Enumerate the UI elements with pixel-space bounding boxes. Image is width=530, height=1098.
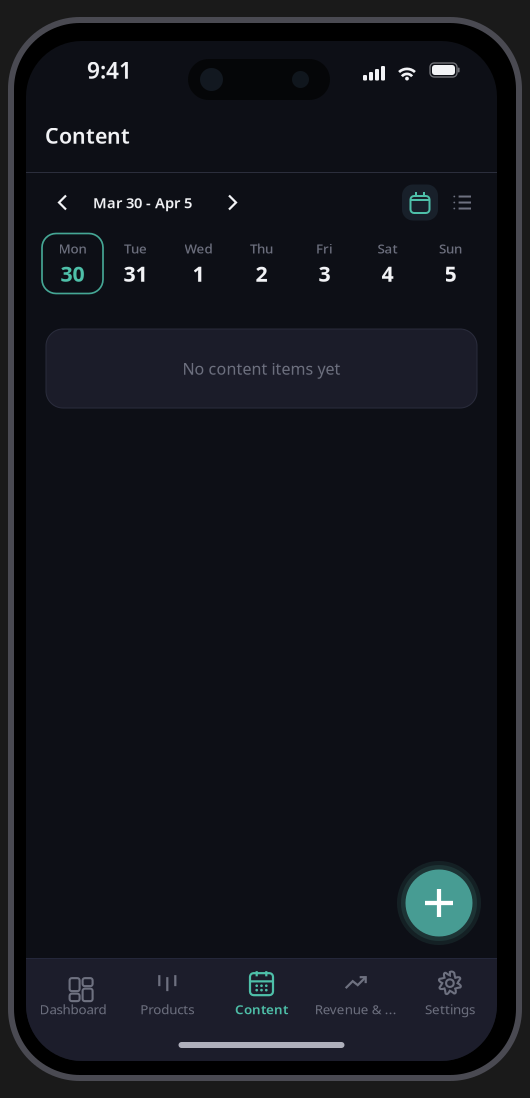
button[interactable]: Wed: [168, 233, 229, 293]
button[interactable]: Dashboard: [26, 959, 120, 1029]
staticText: No content items yet: [182, 358, 340, 379]
staticText: Thu: [250, 239, 273, 257]
staticText: 5: [444, 259, 456, 287]
staticText: 9:41: [87, 55, 132, 85]
button[interactable]: Sat: [357, 233, 418, 293]
staticText: Revenue & ...: [315, 1000, 397, 1018]
button[interactable]: Revenue & ...: [309, 959, 403, 1029]
button[interactable]: Settings: [403, 959, 497, 1029]
staticText: Tue: [124, 239, 147, 257]
staticText: Mon: [58, 239, 86, 257]
staticText: Wed: [184, 239, 212, 257]
button[interactable]: Add content: [397, 861, 481, 945]
staticText: Dashboard: [40, 1000, 107, 1018]
button[interactable]: Mon: [42, 233, 103, 293]
staticText: 4: [381, 259, 393, 287]
button[interactable]: Next week: [216, 187, 246, 217]
staticText: 31: [123, 259, 147, 287]
button[interactable]: Products: [120, 959, 214, 1029]
staticText: Settings: [425, 1000, 475, 1018]
button[interactable]: Sun: [420, 233, 481, 293]
button[interactable]: Content: [214, 959, 309, 1029]
staticText: Mar 30 - Apr 5: [93, 193, 192, 212]
staticText: Fri: [316, 239, 333, 257]
staticText: Products: [140, 1000, 194, 1018]
staticText: Sun: [439, 239, 462, 257]
staticText: 3: [318, 259, 330, 287]
staticText: Content: [235, 1000, 288, 1018]
button[interactable]: Calendar view: [402, 184, 438, 220]
button[interactable]: Tue: [105, 233, 166, 293]
staticText: 30: [60, 259, 84, 287]
button[interactable]: List view: [445, 185, 480, 219]
staticText: 1: [192, 259, 204, 287]
staticText: 2: [255, 259, 267, 287]
button[interactable]: Thu: [231, 233, 292, 293]
staticText: Content: [45, 121, 130, 150]
staticText: Sat: [377, 239, 397, 257]
button[interactable]: Previous week: [46, 187, 76, 217]
button[interactable]: Fri: [294, 233, 355, 293]
